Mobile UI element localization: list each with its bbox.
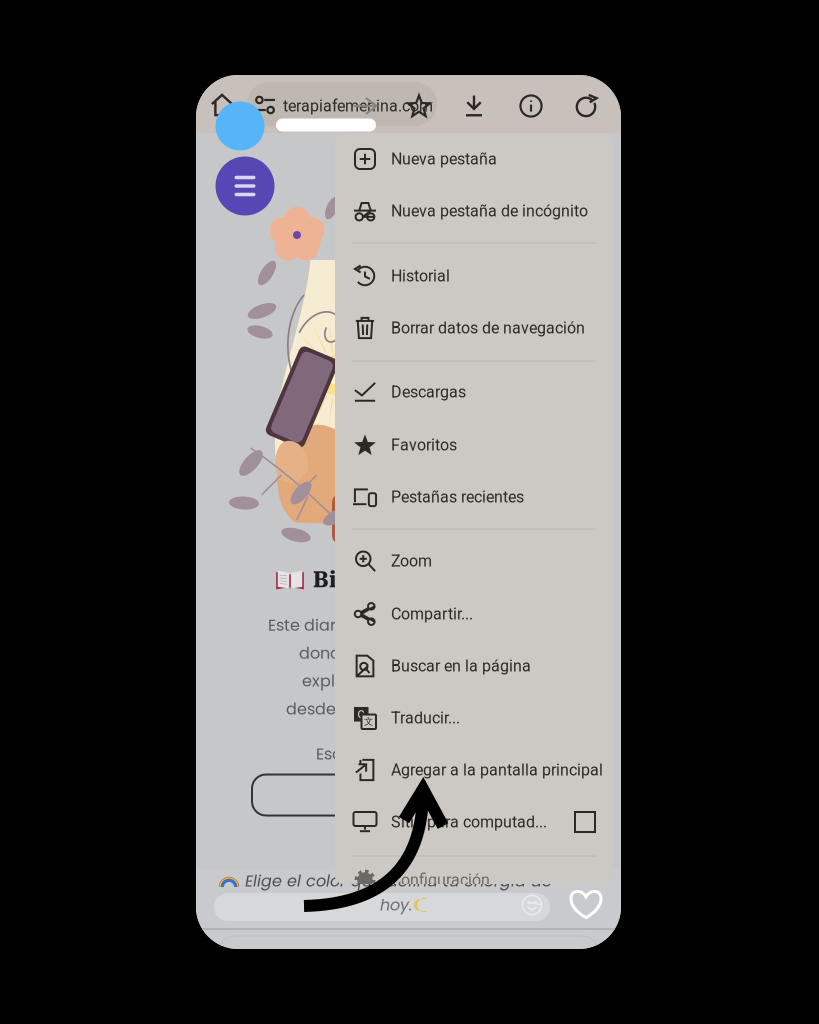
staticText: Agregar a la pantalla principal [391, 761, 603, 779]
button[interactable]: Compartir... [335, 588, 613, 640]
button[interactable]: G [335, 692, 613, 744]
staticText: explorar tus emociones [302, 670, 488, 692]
staticText: Zoom [391, 552, 432, 570]
button[interactable]: Reload [568, 88, 603, 123]
button[interactable]: Forward [347, 90, 382, 121]
staticText: Buscar en la página [391, 657, 531, 675]
button[interactable]: Emoji [516, 889, 548, 921]
staticText: hoy. [380, 894, 412, 916]
staticText: Favoritos [391, 436, 457, 454]
staticText: Elige el color que defina tu energía de [245, 870, 552, 892]
staticText: desde una mirada amable. [286, 698, 504, 720]
staticText: Configuración [391, 871, 490, 889]
staticText: Sitio para computad... [391, 813, 547, 831]
staticText: Descargas [391, 383, 466, 401]
staticText: Pestañas recientes [391, 488, 524, 506]
button[interactable]: Borrar datos de navegación [335, 302, 613, 354]
staticText: Nueva pestaña de incógnito [391, 202, 588, 220]
button[interactable]: Page info [513, 88, 548, 123]
button[interactable]: Buscar en la página [335, 640, 613, 692]
button[interactable]: Nueva pestaña [335, 133, 613, 185]
button[interactable]: Nueva pestaña de incógnito [335, 185, 613, 237]
staticText: Compartir... [391, 605, 473, 623]
staticText: G [357, 708, 364, 721]
staticText: 文 [364, 716, 373, 727]
staticText: Escribe lo que sientas hoy [316, 743, 476, 765]
button[interactable]: Download [457, 89, 490, 122]
staticText: Historial [391, 267, 450, 285]
staticText: Nueva pestaña [391, 150, 497, 168]
button[interactable]: Historial [335, 250, 613, 302]
staticText: Borrar datos de navegación [391, 319, 585, 337]
button[interactable]: Agregar a la pantalla principal [335, 744, 613, 796]
staticText: Bienvenida [313, 567, 440, 592]
staticText: Traducir... [391, 709, 460, 727]
button[interactable]: Site settings [247, 88, 283, 122]
staticText: Este diario es tu espacio seguro, [268, 614, 522, 636]
button[interactable]: Home [203, 86, 241, 124]
staticText: donde puedes escribir y [299, 642, 491, 664]
button[interactable]: Accessibility menu [215, 156, 274, 215]
button[interactable]: Descargas [335, 366, 613, 418]
staticText: terapiafemenina.com [283, 97, 433, 115]
button[interactable]: Like [564, 883, 608, 924]
button[interactable]: Zoom [335, 535, 613, 587]
button[interactable]: Pestañas recientes [335, 471, 613, 523]
button[interactable]: Bookmark [401, 89, 436, 123]
button[interactable]: Favoritos [335, 419, 613, 471]
button[interactable]: Sitio para computad... [335, 796, 613, 848]
